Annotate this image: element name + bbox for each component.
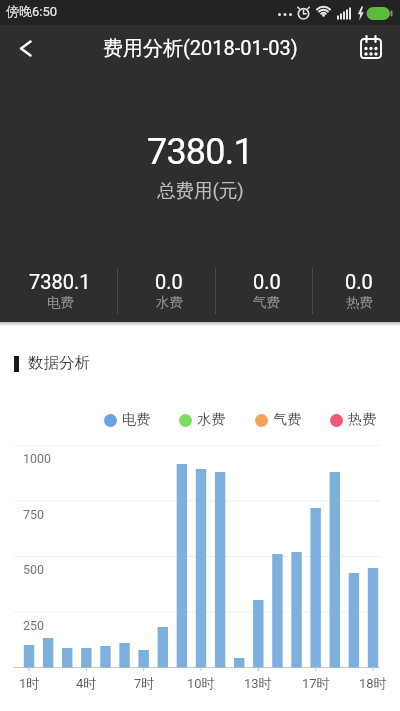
- button[interactable]: [6, 31, 46, 65]
- staticText: 13时: [244, 675, 272, 691]
- staticText: 热费: [348, 411, 376, 429]
- staticText: 17时: [302, 675, 330, 691]
- staticText: 热费: [346, 294, 373, 311]
- staticText: 1000: [23, 451, 52, 466]
- staticText: 水费: [156, 294, 183, 311]
- staticText: 500: [23, 562, 45, 577]
- staticText: 7时: [134, 675, 155, 691]
- staticText: 0.0: [155, 270, 183, 293]
- staticText: 7380.1: [147, 131, 253, 173]
- staticText: 7380.1: [29, 270, 91, 293]
- staticText: 4时: [76, 675, 97, 691]
- staticText: 气费: [253, 294, 280, 311]
- staticText: 250: [23, 618, 45, 633]
- staticText: 0.0: [253, 270, 281, 293]
- button[interactable]: [353, 31, 389, 65]
- staticText: 数据分析: [28, 353, 90, 373]
- staticText: 傍晚6:50: [6, 3, 58, 19]
- staticText: 水费: [197, 411, 225, 429]
- button[interactable]: 7380.1: [10, 270, 110, 293]
- staticText: 1时: [19, 675, 40, 691]
- staticText: 电费: [47, 294, 74, 311]
- staticText: 费用分析(2018-01-03): [103, 36, 298, 61]
- staticText: 0.0: [345, 270, 373, 293]
- button[interactable]: 0.0: [120, 270, 218, 293]
- button[interactable]: 0.0: [315, 270, 400, 293]
- staticText: 电费: [122, 411, 150, 429]
- staticText: 10时: [187, 675, 215, 691]
- button[interactable]: 0.0: [218, 270, 315, 293]
- staticText: 总费用(元): [157, 179, 244, 202]
- staticText: 18时: [359, 675, 387, 691]
- staticText: 750: [23, 507, 45, 522]
- staticText: 气费: [273, 411, 301, 429]
